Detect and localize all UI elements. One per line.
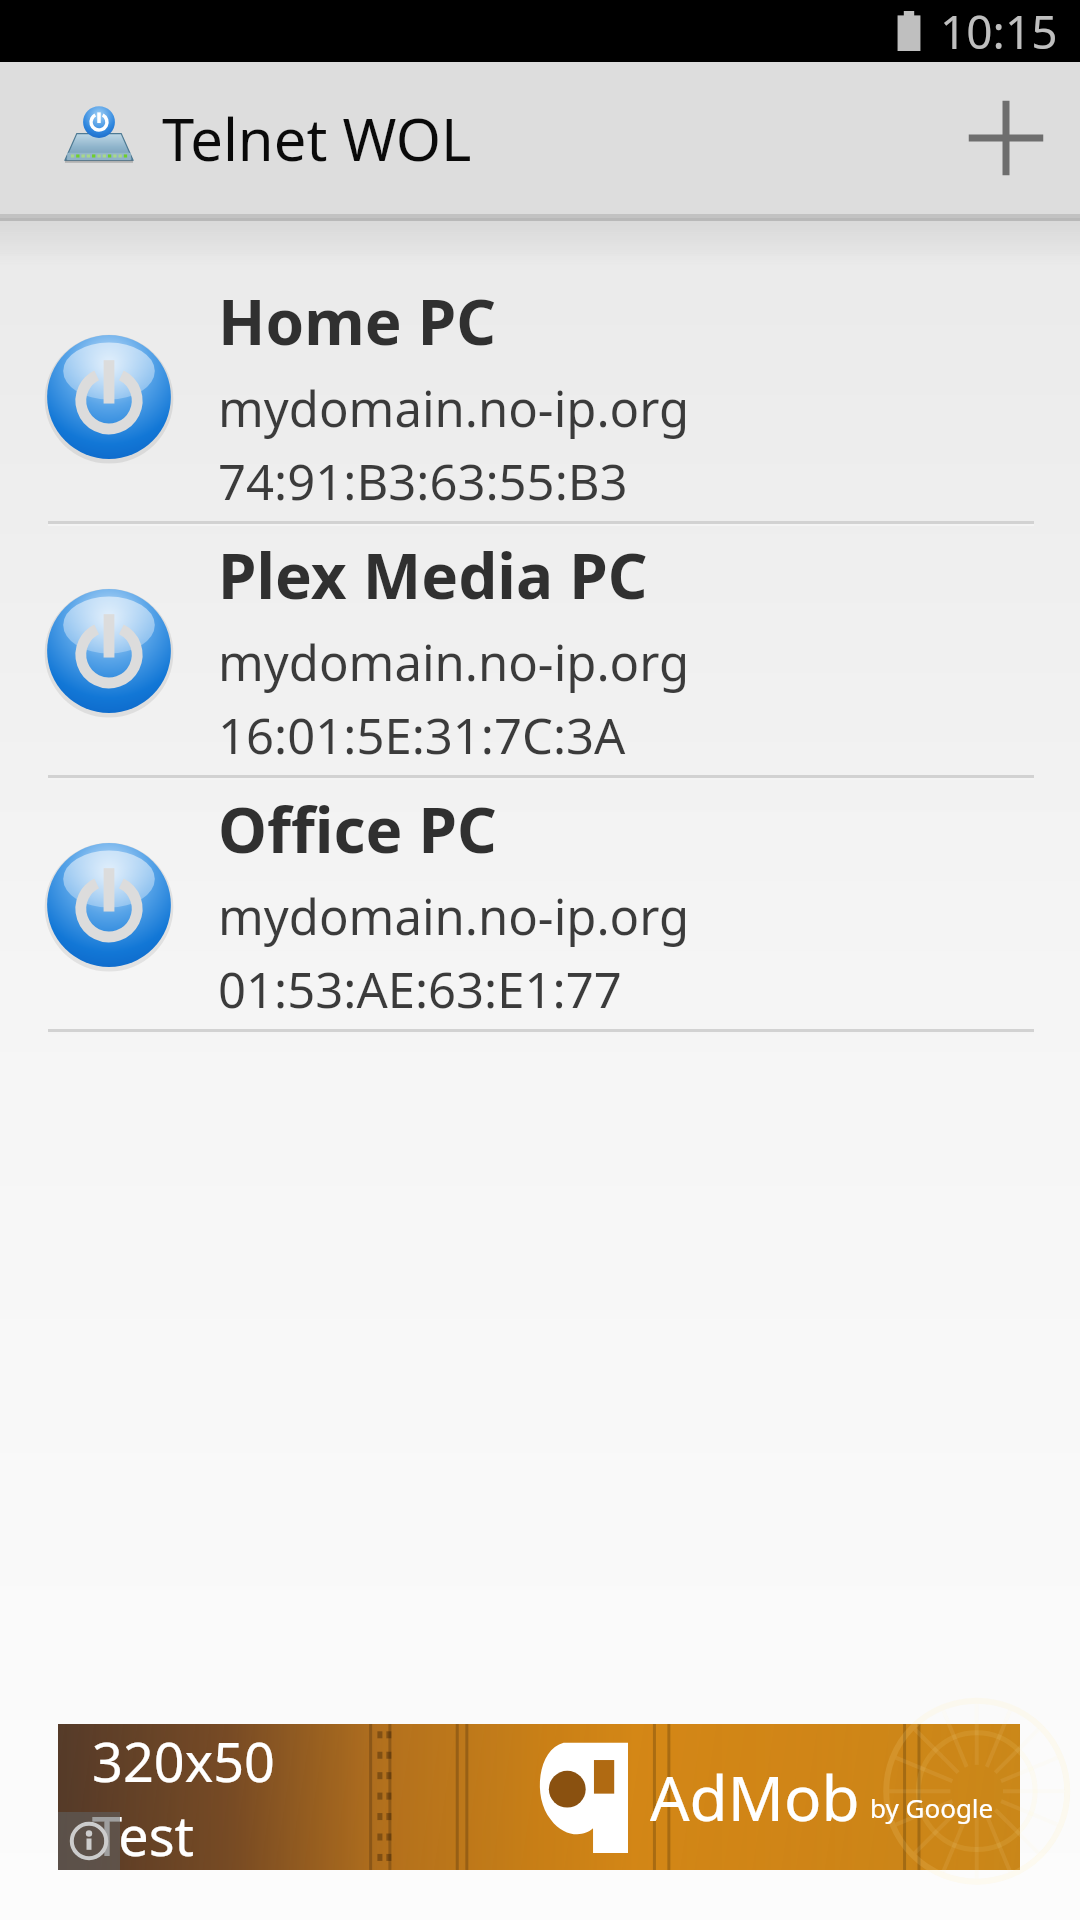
button[interactable]: Home PC — [0, 272, 1080, 521]
staticText: 10:15 — [940, 0, 1058, 62]
staticText: AdMob — [650, 1755, 860, 1839]
staticText: 320x50 — [92, 1724, 276, 1798]
staticText: mydomain.no-ip.org — [218, 629, 690, 696]
staticText: by Google — [870, 1790, 994, 1825]
staticText: mydomain.no-ip.org — [218, 883, 690, 950]
staticText: Home PC — [218, 279, 497, 363]
staticText: Telnet WOL — [162, 99, 472, 178]
button[interactable]: Plex Media PC — [0, 526, 1080, 775]
staticText: 74:91:B3:63:55:B3 — [218, 448, 628, 515]
staticText: 01:53:AE:63:E1:77 — [218, 956, 622, 1023]
staticText: mydomain.no-ip.org — [218, 375, 690, 442]
button[interactable]: Advertisement — [58, 1724, 1020, 1870]
staticText: Test Banner — [92, 1798, 388, 1870]
button[interactable]: Office PC — [0, 780, 1080, 1029]
staticText: Office PC — [218, 787, 497, 871]
button[interactable]: Add host — [932, 62, 1080, 214]
staticText: 16:01:5E:31:7C:3A — [218, 702, 626, 769]
staticText: Plex Media PC — [218, 533, 648, 617]
